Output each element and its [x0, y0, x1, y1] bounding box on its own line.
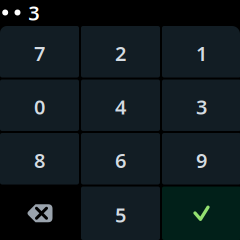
button[interactable]: Delete [0, 186, 79, 240]
staticText: 9 [196, 147, 207, 174]
button[interactable]: 5 [81, 186, 160, 240]
button[interactable]: 6 [81, 133, 160, 184]
button[interactable]: 8 [0, 133, 79, 184]
button[interactable]: 4 [81, 79, 160, 131]
staticText: 3 [28, 0, 39, 26]
button[interactable]: 2 [81, 26, 160, 77]
button[interactable]: 1 [162, 26, 240, 77]
button[interactable]: 3 [162, 79, 240, 131]
button[interactable]: 9 [162, 133, 240, 184]
staticText: 6 [115, 147, 126, 174]
staticText: 5 [115, 201, 126, 228]
button[interactable]: 7 [0, 26, 79, 77]
staticText: 3 [196, 93, 207, 120]
button[interactable]: 0 [0, 79, 79, 131]
staticText: 2 [115, 40, 126, 67]
staticText: 7 [34, 40, 45, 67]
staticText: 8 [34, 147, 45, 174]
staticText: 0 [34, 93, 45, 120]
staticText: 1 [196, 40, 207, 67]
button[interactable]: Confirm passcode [162, 186, 240, 240]
staticText: 4 [115, 93, 126, 120]
